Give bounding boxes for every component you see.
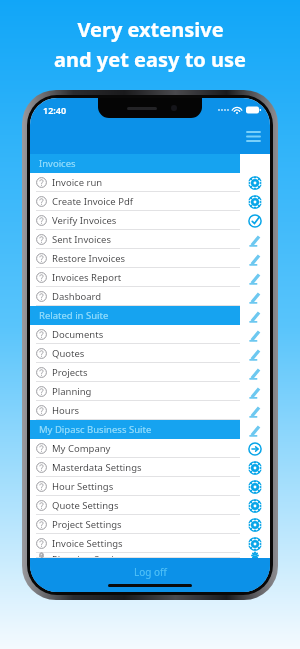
staticText: Quotes: [52, 347, 85, 360]
button[interactable]: Verify Invoices: [30, 211, 240, 230]
staticText: Restore Invoices: [52, 252, 126, 265]
button[interactable]: Sent Invoices: [30, 230, 240, 249]
button[interactable]: Settings: [240, 534, 270, 553]
button[interactable]: Edit: [240, 268, 270, 287]
staticText: Hours: [52, 404, 80, 417]
button[interactable]: My Company: [30, 439, 240, 458]
button[interactable]: Planning: [30, 382, 240, 401]
staticText: Quote Settings: [52, 499, 119, 512]
button[interactable]: Invoices Report: [30, 268, 240, 287]
staticText: Log off: [134, 565, 167, 579]
button[interactable]: Settings: [240, 496, 270, 515]
button[interactable]: Documents: [30, 325, 240, 344]
staticText: Sent Invoices: [52, 233, 111, 246]
staticText: 12:40: [43, 104, 67, 116]
button[interactable]: Invoice Settings: [30, 534, 240, 553]
staticText: Verify Invoices: [52, 214, 117, 227]
staticText: Create Invoice Pdf: [52, 195, 134, 208]
button[interactable]: Hour Settings: [30, 477, 240, 496]
staticText: Documents: [52, 328, 104, 341]
button[interactable]: Project Settings: [30, 515, 240, 534]
staticText: and yet easy to use: [54, 46, 246, 73]
button[interactable]: Hours: [30, 401, 240, 420]
staticText: Project Settings: [52, 518, 122, 531]
button[interactable]: Settings: [240, 477, 270, 496]
button[interactable]: Edit: [240, 363, 270, 382]
button[interactable]: Masterdata Settings: [30, 458, 240, 477]
button[interactable]: Log off: [30, 558, 270, 592]
staticText: Dashboard: [52, 290, 102, 303]
staticText: Invoice Settings: [52, 537, 123, 550]
button[interactable]: Edit: [240, 401, 270, 420]
button[interactable]: Dashboard: [30, 287, 240, 306]
button[interactable]: Quotes: [30, 344, 240, 363]
staticText: Invoices Report: [52, 271, 122, 284]
button[interactable]: Related in Suite: [30, 306, 240, 325]
button[interactable]: Edit: [240, 382, 270, 401]
button[interactable]: Restore Invoices: [30, 249, 240, 268]
staticText: Hour Settings: [52, 480, 114, 493]
button[interactable]: Menu: [242, 126, 264, 148]
button[interactable]: Settings: [240, 173, 270, 192]
button[interactable]: Edit: [240, 306, 270, 325]
button[interactable]: Quote Settings: [30, 496, 240, 515]
button[interactable]: Projects: [30, 363, 240, 382]
staticText: Very extensive: [77, 16, 224, 43]
button[interactable]: Settings: [240, 553, 270, 558]
button[interactable]: My Dipasc Business Suite: [30, 420, 240, 439]
button[interactable]: Create Invoice Pdf: [30, 192, 240, 211]
staticText: Planning: [52, 385, 92, 398]
staticText: Projects: [52, 366, 88, 379]
staticText: Invoices: [39, 157, 76, 170]
staticText: My Dipasc Business Suite: [39, 423, 152, 436]
button[interactable]: Edit: [240, 249, 270, 268]
staticText: Invoice run: [52, 176, 103, 189]
button[interactable]: Planning Settings: [30, 553, 240, 558]
button[interactable]: Edit: [240, 230, 270, 249]
button[interactable]: Invoice run: [30, 173, 240, 192]
button[interactable]: Edit: [240, 325, 270, 344]
button[interactable]: Settings: [240, 458, 270, 477]
button[interactable]: Invoices: [30, 154, 240, 173]
button[interactable]: Settings: [240, 515, 270, 534]
button[interactable]: Verified: [240, 211, 270, 230]
button[interactable]: Edit: [240, 287, 270, 306]
staticText: My Company: [52, 442, 111, 455]
staticText: Related in Suite: [39, 309, 109, 322]
button[interactable]: Open: [240, 439, 270, 458]
button[interactable]: Edit: [240, 420, 270, 439]
staticText: Planning Settings: [52, 553, 131, 558]
button[interactable]: Settings: [240, 192, 270, 211]
staticText: Masterdata Settings: [52, 461, 142, 474]
button[interactable]: Edit: [240, 344, 270, 363]
